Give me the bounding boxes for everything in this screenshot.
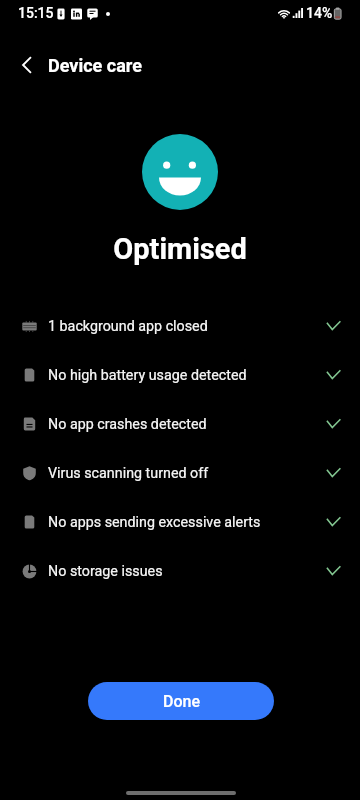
staticText: 1 background app closed	[48, 318, 208, 335]
button[interactable]: No storage issues	[0, 547, 360, 596]
staticText: Done	[163, 692, 200, 711]
staticText: No apps sending excessive alerts	[48, 514, 261, 531]
staticText: Virus scanning turned off	[48, 465, 209, 482]
button[interactable]: Done	[88, 682, 274, 720]
button[interactable]: No app crashes detected	[0, 400, 360, 449]
staticText: No high battery usage detected	[48, 367, 247, 384]
button[interactable]: 1 background app closed	[0, 302, 360, 351]
button[interactable]: Back	[7, 45, 47, 85]
staticText: No app crashes detected	[48, 416, 207, 433]
staticText: No storage issues	[48, 563, 163, 580]
staticText: Optimised	[0, 232, 360, 266]
button[interactable]: No high battery usage detected	[0, 351, 360, 400]
staticText: Device care	[48, 55, 142, 76]
staticText: 14%	[306, 5, 333, 21]
button[interactable]: No apps sending excessive alerts	[0, 498, 360, 547]
button[interactable]: Virus scanning turned off	[0, 449, 360, 498]
staticText: 15:15	[18, 5, 54, 21]
